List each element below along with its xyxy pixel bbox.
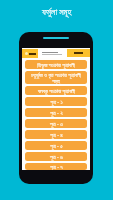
staticText: চতুর্ভুজ ও বৃত্ত সংক্রান্ত সূত্রাবলী সমূ…: [29, 71, 83, 84]
staticText: ত্রিভুজ সংক্রান্ত সূত্রাবলী: [37, 61, 75, 68]
staticText: সূত্র - ৭: [50, 163, 63, 170]
button[interactable]: ত্রিভুজ সংক্রান্ত সূত্রাবলী: [25, 60, 87, 69]
staticText: ঘনবস্তু সংক্রান্ত সূত্রাবলী: [38, 87, 75, 94]
button[interactable]: ঘনবস্তু সংক্রান্ত সূত্রাবলী: [25, 86, 87, 95]
button[interactable]: সূত্র - ৭: [25, 163, 87, 170]
button[interactable]: চতুর্ভুজ ও বৃত্ত সংক্রান্ত সূত্রাবলী সমূ…: [25, 71, 87, 84]
button[interactable]: সূত্র - ১: [25, 97, 87, 106]
staticText: সূত্র - ২: [50, 109, 63, 116]
staticText: সূত্র - ৬: [50, 153, 63, 160]
staticText: সূত্র - ৫: [50, 142, 63, 149]
staticText: সূত্র - ১: [50, 98, 63, 105]
staticText: ফর্মুলা সমূহ: [42, 6, 72, 18]
button[interactable]: Advertisement: [22, 48, 90, 58]
staticText: সূত্র - ৪: [50, 131, 63, 138]
staticText: সূত্র - ৩: [50, 120, 63, 127]
button[interactable]: সূত্র - ৫: [25, 141, 87, 150]
button[interactable]: সূত্র - ২: [25, 108, 87, 117]
button[interactable]: সূত্র - ৩: [25, 119, 87, 128]
button[interactable]: সূত্র - ৪: [25, 130, 87, 139]
button[interactable]: সূত্র - ৬: [25, 152, 87, 161]
